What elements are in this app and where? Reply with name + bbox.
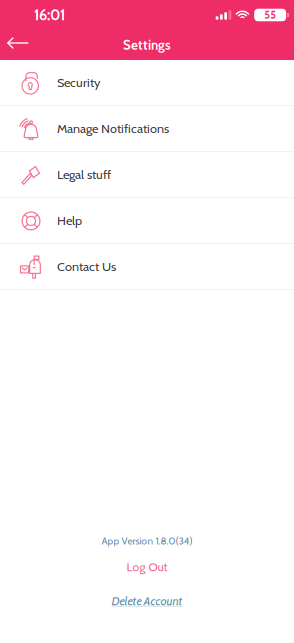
button[interactable]: Log Out: [0, 547, 294, 574]
staticText: App Version 1.8.0(34): [101, 535, 192, 547]
staticText: Security: [57, 75, 100, 90]
staticText: Help: [57, 213, 82, 228]
staticText: Settings: [123, 37, 171, 53]
staticText: Delete Account: [111, 594, 182, 608]
button[interactable]: Legal stuff: [0, 152, 294, 198]
staticText: Legal stuff: [57, 167, 111, 182]
button[interactable]: Security: [0, 60, 294, 106]
staticText: 16:01: [34, 6, 65, 24]
staticText: Manage Notifications: [57, 121, 169, 136]
staticText: 55: [264, 8, 276, 21]
staticText: Contact Us: [57, 259, 116, 274]
button[interactable]: Manage Notifications: [0, 106, 294, 152]
button[interactable]: Delete Account: [0, 574, 294, 608]
button[interactable]: Help: [0, 198, 294, 244]
button[interactable]: Contact Us: [0, 244, 294, 290]
staticText: Log Out: [126, 560, 167, 574]
button[interactable]: Back: [0, 30, 36, 60]
